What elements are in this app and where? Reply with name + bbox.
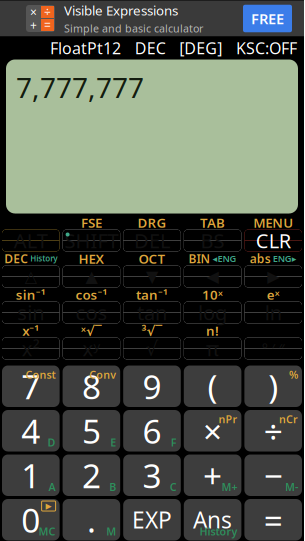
button[interactable]: Ans — [184, 499, 241, 540]
button[interactable]: ALT — [2, 229, 60, 251]
staticText: FREE — [251, 9, 284, 28]
staticText: ALT — [14, 227, 48, 254]
staticText: ) — [268, 364, 278, 408]
staticText: nPr — [218, 412, 237, 426]
button[interactable]: 1 — [2, 454, 60, 496]
button[interactable]: tan — [123, 301, 181, 323]
button[interactable]: 6 — [123, 410, 181, 451]
staticText: n! — [206, 322, 219, 339]
staticText: sin — [17, 299, 44, 326]
staticText: KSC:OFF — [236, 37, 297, 59]
staticText: = — [44, 17, 51, 33]
button[interactable]: ▼ — [123, 265, 181, 287]
staticText: F — [171, 435, 177, 449]
button[interactable]: sin — [2, 301, 60, 323]
staticText: [DEG] — [179, 37, 222, 59]
staticText: 8 — [82, 364, 101, 408]
staticText: log — [198, 299, 227, 326]
button[interactable]: 0 — [2, 499, 60, 540]
button[interactable]: − — [244, 454, 302, 496]
staticText: ° ′ ″ — [262, 339, 285, 358]
button[interactable]: 2 — [63, 454, 120, 496]
staticText: tan — [137, 299, 167, 326]
staticText: BIN — [189, 250, 211, 266]
staticText: DEC — [135, 37, 166, 59]
staticText: 3 — [142, 453, 161, 497]
staticText: ▼ — [146, 267, 158, 286]
staticText: HEX — [78, 250, 104, 267]
staticText: CLR — [256, 227, 291, 254]
button[interactable]: 8 — [63, 365, 120, 407]
button[interactable]: × — [0, 0, 304, 36]
staticText: OCT — [138, 250, 165, 267]
button[interactable]: EXP — [123, 499, 181, 540]
staticText: sin⁻¹ — [16, 286, 46, 303]
staticText: π — [206, 335, 219, 362]
staticText: xʸ — [82, 335, 100, 362]
staticText: Conv — [89, 367, 116, 382]
button[interactable]: x² — [2, 337, 60, 359]
staticText: ³√‾ — [141, 322, 162, 339]
button[interactable]: 7 — [2, 365, 60, 407]
staticText: 9 — [142, 364, 161, 408]
staticText: D — [48, 435, 56, 449]
button[interactable]: ▲ — [63, 265, 120, 287]
button[interactable]: √ — [123, 337, 181, 359]
staticText: Visible Expressions — [64, 2, 178, 19]
button[interactable]: + — [184, 454, 241, 496]
button[interactable]: DEL — [123, 229, 181, 251]
button[interactable]: 3 — [123, 454, 181, 496]
staticText: DRG — [137, 214, 166, 231]
staticText: ln — [265, 299, 282, 326]
staticText: 1 — [21, 453, 40, 497]
button[interactable]: 5 — [63, 410, 120, 451]
staticText: × — [203, 409, 222, 453]
staticText: eˣ — [267, 286, 280, 303]
button[interactable]: = — [244, 499, 302, 540]
button[interactable]: 4 — [2, 410, 60, 451]
button[interactable]: log — [184, 301, 241, 323]
button[interactable]: ( — [184, 365, 241, 407]
button[interactable]: ln — [244, 301, 302, 323]
button[interactable]: ) — [244, 365, 302, 407]
staticText: Ans — [193, 505, 232, 535]
staticText: ▶ — [267, 267, 279, 286]
staticText: FloatPt12 — [50, 37, 121, 59]
staticText: ÷ — [44, 4, 51, 20]
staticText: nCr — [279, 412, 298, 426]
button[interactable]: . — [63, 499, 120, 540]
staticText: + — [30, 17, 37, 33]
staticText: 6 — [142, 409, 161, 453]
staticText: FSE — [81, 214, 102, 231]
staticText: x² — [22, 335, 40, 362]
staticText: 7 — [21, 364, 40, 408]
staticText: tan⁻¹ — [136, 286, 168, 303]
staticText: x⁻¹ — [22, 322, 39, 339]
staticText: + — [203, 453, 222, 497]
button[interactable]: ÷ — [244, 410, 302, 451]
staticText: abs — [250, 250, 271, 266]
button[interactable]: ° ′ ″ — [244, 337, 302, 359]
staticText: % — [289, 367, 298, 382]
staticText: M — [106, 524, 116, 538]
button[interactable]: 9 — [123, 365, 181, 407]
staticText: cos — [75, 299, 107, 326]
staticText: 10ˣ — [202, 286, 223, 303]
button[interactable]: π — [184, 337, 241, 359]
button[interactable]: SHIFT — [63, 229, 120, 251]
button[interactable]: ▶ — [244, 265, 302, 287]
staticText: MENU — [253, 214, 293, 231]
button[interactable]: ◀ — [184, 265, 241, 287]
staticText: TAB — [200, 214, 225, 231]
staticText: = — [264, 498, 283, 541]
staticText: ◀ — [207, 267, 219, 286]
button[interactable]: × — [184, 410, 241, 451]
staticText: 5 — [82, 409, 101, 453]
staticText: 2 — [82, 453, 101, 497]
staticText: √ — [145, 337, 158, 360]
button[interactable]: BS — [184, 229, 241, 251]
button[interactable]: cos — [63, 301, 120, 323]
button[interactable]: xʸ — [63, 337, 120, 359]
button[interactable]: △ — [2, 265, 60, 287]
button[interactable]: CLR — [244, 229, 302, 251]
